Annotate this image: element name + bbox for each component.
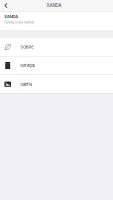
button[interactable]: SOBRE: [0, 38, 113, 56]
staticText: SOBRE: [20, 44, 33, 49]
staticText: Galeria: [20, 82, 32, 87]
button[interactable]: Back: [0, 0, 12, 11]
staticText: Conheça nos melhor!: [4, 20, 34, 24]
button[interactable]: Serviços: [0, 57, 113, 75]
staticText: XANDA: [46, 3, 61, 8]
staticText: Serviços: [20, 63, 35, 68]
staticText: XANDA: [4, 14, 18, 19]
button[interactable]: Galeria: [0, 75, 113, 93]
